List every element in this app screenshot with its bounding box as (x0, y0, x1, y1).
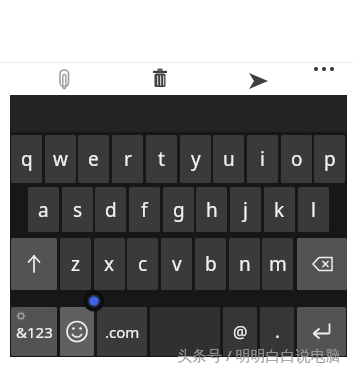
button[interactable]: v (161, 238, 192, 290)
button[interactable]: n (229, 238, 260, 290)
button[interactable]: z (60, 238, 91, 290)
button[interactable]: o (281, 135, 312, 183)
staticText: o (291, 146, 303, 172)
staticText: a (38, 197, 49, 223)
button[interactable]: f (129, 187, 160, 232)
staticText: u (223, 146, 235, 172)
button[interactable]: h (196, 187, 227, 232)
staticText: z (71, 251, 80, 277)
button[interactable]: a (28, 187, 59, 232)
button[interactable]: g (163, 187, 194, 232)
button[interactable]: .com (97, 307, 147, 356)
staticText: . (275, 319, 280, 344)
button[interactable]: q (11, 135, 42, 183)
staticText: f (141, 197, 148, 223)
button[interactable]: e (78, 135, 109, 183)
staticText: 头条号 / 明明白白说电脑 (177, 345, 341, 365)
button[interactable] (11, 238, 57, 290)
staticText: c (138, 251, 148, 277)
staticText: g (173, 197, 185, 223)
button[interactable]: y (180, 135, 211, 183)
staticText: m (269, 251, 287, 277)
staticText: b (205, 251, 217, 277)
staticText: q (21, 146, 33, 172)
button[interactable] (60, 307, 94, 356)
staticText: @ (233, 321, 248, 343)
button[interactable]: l (298, 187, 329, 232)
button[interactable]: u (213, 135, 244, 183)
staticText: d (105, 197, 117, 223)
staticText: i (260, 146, 265, 172)
staticText: n (239, 251, 251, 277)
button[interactable]: x (94, 238, 125, 290)
staticText: t (158, 146, 165, 172)
button[interactable]: &123 (11, 307, 57, 356)
button[interactable]: b (195, 238, 226, 290)
staticText: &123 (16, 322, 53, 342)
button[interactable]: w (45, 135, 76, 183)
button[interactable]: s (62, 187, 93, 232)
button[interactable]: d (95, 187, 126, 232)
staticText: j (243, 197, 248, 223)
staticText: y (191, 146, 201, 172)
button[interactable]: c (127, 238, 158, 290)
staticText: .com (105, 322, 140, 342)
button[interactable]: j (230, 187, 261, 232)
staticText: p (324, 146, 336, 172)
staticText: x (104, 251, 115, 277)
button[interactable] (297, 307, 346, 356)
staticText: r (124, 146, 132, 172)
staticText: k (274, 197, 285, 223)
button[interactable]: r (112, 135, 143, 183)
button[interactable]: p (314, 135, 345, 183)
staticText: v (172, 251, 182, 277)
button[interactable]: t (146, 135, 177, 183)
staticText: h (206, 197, 218, 223)
staticText: w (53, 146, 68, 172)
button[interactable]: @ (223, 307, 257, 356)
button[interactable] (150, 307, 220, 356)
staticText: l (311, 197, 316, 223)
button[interactable]: i (247, 135, 278, 183)
staticText: e (88, 146, 99, 172)
staticText: s (73, 197, 83, 223)
button[interactable]: m (262, 238, 293, 290)
button[interactable]: . (260, 307, 294, 356)
button[interactable]: k (264, 187, 295, 232)
button[interactable] (297, 238, 347, 290)
